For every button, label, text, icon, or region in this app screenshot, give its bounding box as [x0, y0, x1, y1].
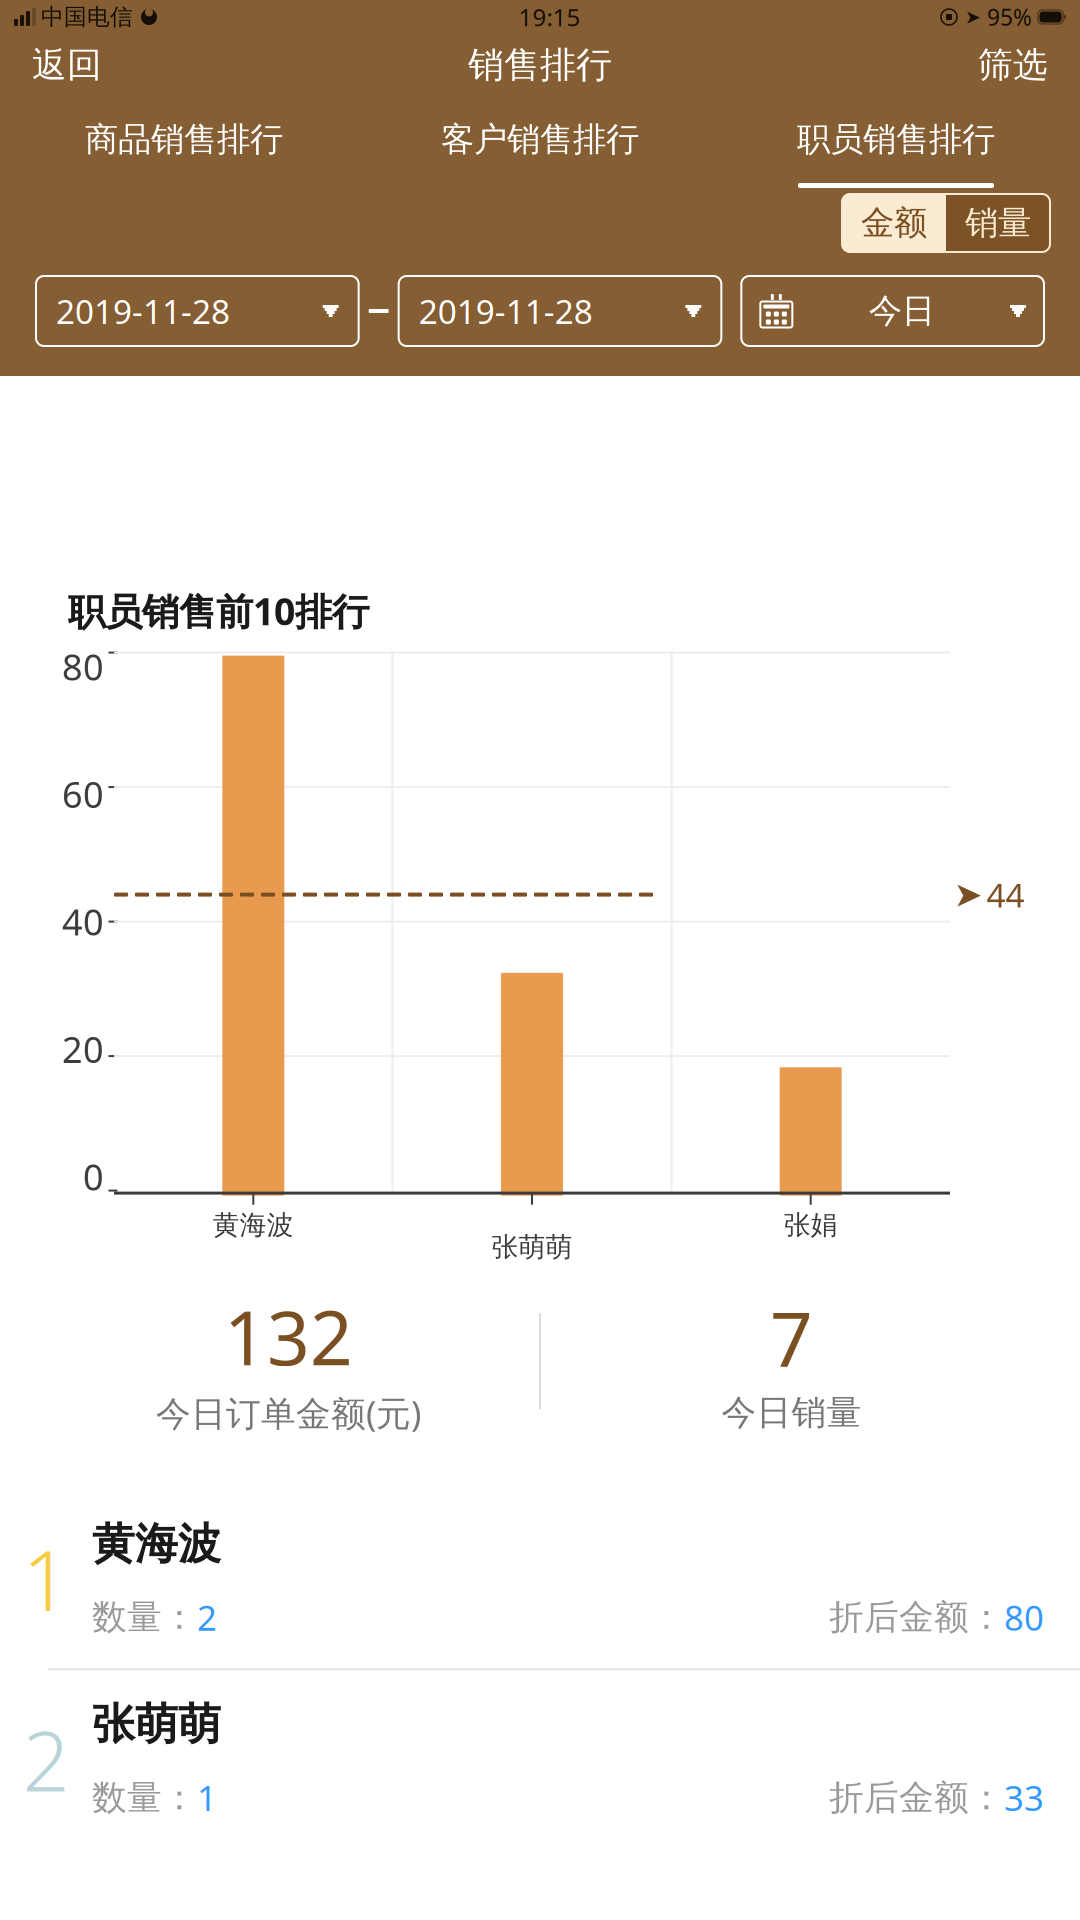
staticText: 80: [62, 643, 104, 690]
staticText: 筛选: [978, 44, 1048, 86]
staticText: 19:15: [518, 1, 580, 33]
staticText: 黄海波: [213, 1209, 294, 1241]
staticText: 黄海波: [92, 1518, 221, 1570]
staticText: 折后金额：: [829, 1776, 1004, 1819]
button[interactable]: 客户销售排行: [362, 96, 718, 188]
staticText: 33: [1004, 1775, 1044, 1821]
staticText: 80: [1004, 1594, 1044, 1640]
staticText: 返回: [32, 44, 102, 86]
staticText: 1: [22, 1524, 69, 1634]
button[interactable]: 1: [0, 1490, 1080, 1668]
staticText: 今日: [869, 290, 935, 331]
staticText: 张萌萌: [92, 1698, 221, 1751]
button[interactable]: 职员销售排行: [718, 96, 1074, 188]
button[interactable]: 2019-11-28: [36, 276, 359, 346]
staticText: 7: [770, 1288, 813, 1387]
staticText: 张萌萌: [491, 1231, 572, 1263]
button[interactable]: 今日: [741, 276, 1044, 346]
button[interactable]: 商品销售排行: [6, 96, 362, 188]
staticText: 商品销售排行: [85, 119, 283, 160]
staticText: 40: [62, 898, 104, 945]
button[interactable]: 2: [0, 1668, 1080, 1849]
staticText: 客户销售排行: [441, 119, 639, 160]
staticText: 1: [197, 1775, 217, 1821]
staticText: 销量: [965, 202, 1031, 243]
button[interactable]: 2019-11-28: [399, 276, 721, 346]
staticText: 折后金额：: [829, 1596, 1004, 1638]
staticText: 职员销售前10排行: [68, 586, 369, 636]
staticText: 中国电信: [41, 3, 133, 31]
staticText: 60: [62, 770, 104, 818]
button[interactable]: 销量: [946, 194, 1050, 252]
staticText: 数量：: [92, 1776, 197, 1819]
staticText: 44: [986, 872, 1024, 917]
button[interactable]: 筛选: [964, 36, 1062, 94]
button[interactable]: 返回: [18, 36, 116, 94]
staticText: 2: [197, 1594, 217, 1640]
staticText: 2019-11-28: [56, 289, 230, 333]
staticText: 2019-11-28: [419, 289, 593, 333]
staticText: 今日订单金额(元): [156, 1390, 421, 1436]
staticText: ➤: [953, 875, 982, 914]
staticText: 数量：: [92, 1596, 197, 1638]
staticText: 职员销售排行: [797, 119, 995, 160]
staticText: 今日销量: [721, 1391, 861, 1434]
staticText: 张娟: [784, 1209, 838, 1241]
staticText: 0: [83, 1153, 104, 1200]
staticText: 20: [62, 1025, 104, 1073]
staticText: ➤: [965, 6, 981, 28]
staticText: 132: [224, 1287, 353, 1386]
staticText: 销售排行: [468, 43, 612, 87]
button[interactable]: 金额: [842, 194, 946, 252]
staticText: 95%: [987, 2, 1032, 32]
staticText: 金额: [861, 202, 927, 243]
staticText: 2: [22, 1704, 69, 1814]
